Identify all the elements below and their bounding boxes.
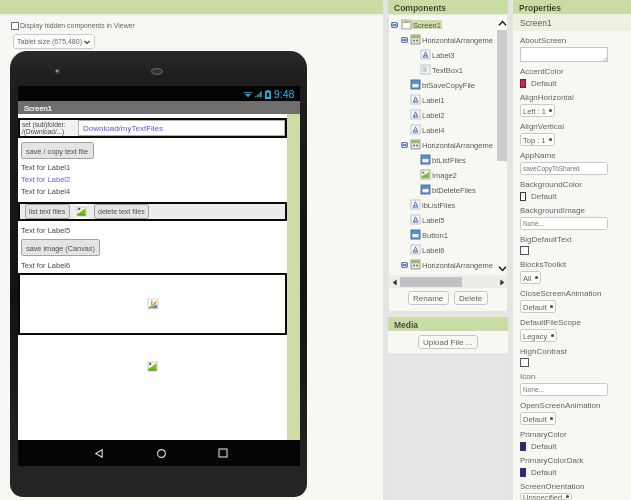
button[interactable]: Legacy: [520, 329, 557, 342]
staticText: Screen1: [24, 104, 52, 112]
button[interactable]: TextBox1: [388, 62, 508, 77]
staticText: AccentColor: [520, 67, 564, 76]
staticText: Image2: [432, 171, 458, 179]
button[interactable]: btListFiles: [388, 152, 508, 167]
staticText: AlignHorizontal: [520, 93, 574, 102]
button[interactable]: saveCopyToShared: [520, 162, 608, 175]
staticText: Text for Label4: [21, 187, 71, 195]
staticText: btDeleteFiles: [432, 186, 476, 194]
staticText: btSaveCopyFile: [422, 81, 475, 89]
staticText: AlignVertical: [520, 122, 565, 131]
button[interactable]: lbListFiles: [388, 197, 508, 212]
staticText: Default: [531, 192, 557, 201]
button[interactable]: Label5: [388, 212, 508, 227]
staticText: All: [523, 274, 532, 282]
button[interactable]: HorizontalArrangeme: [388, 257, 508, 272]
button[interactable]: Screen1: [388, 17, 508, 32]
button[interactable]: HorizontalArrangeme: [388, 137, 508, 152]
button[interactable]: Tablet size (675,480): [13, 34, 95, 49]
button[interactable]: Scroll left: [388, 276, 400, 288]
staticText: Icon: [520, 372, 536, 381]
button[interactable]: Label6: [388, 242, 508, 257]
staticText: Legacy: [523, 332, 548, 340]
button[interactable]: Label1: [388, 92, 508, 107]
button[interactable]: btSaveCopyFile: [388, 77, 508, 92]
staticText: HorizontalArrangeme: [422, 36, 493, 44]
staticText: Default: [531, 442, 557, 451]
staticText: Media: [394, 320, 419, 329]
button[interactable]: save / copy text file: [21, 142, 94, 159]
button[interactable]: Default: [520, 441, 557, 451]
button[interactable]: Default: [520, 467, 557, 477]
staticText: AppName: [520, 151, 556, 160]
staticText: Top : 1: [523, 136, 546, 144]
staticText: Unspecified: [523, 493, 563, 500]
staticText: BlocksToolkit: [520, 260, 567, 269]
staticText: /(Download/...): [22, 128, 65, 135]
staticText: Text for Label2: [21, 175, 71, 183]
staticText: Label4: [422, 126, 445, 134]
button[interactable]: [520, 47, 608, 62]
button[interactable]: Upload File ...: [418, 335, 478, 349]
button[interactable]: Default: [520, 191, 557, 201]
button[interactable]: Delete: [454, 291, 488, 305]
staticText: TextBox1: [432, 66, 463, 74]
staticText: save image (Canvas): [26, 244, 95, 252]
staticText: save / copy text file: [26, 147, 89, 155]
button[interactable]: Default: [520, 412, 556, 425]
staticText: BackgroundColor: [520, 180, 582, 189]
button[interactable]: Rename: [408, 291, 449, 305]
button[interactable]: Back: [88, 442, 110, 464]
staticText: Default: [531, 468, 557, 477]
button[interactable]: Display hidden components in Viewer: [11, 20, 135, 31]
button[interactable]: Unspecified: [520, 493, 572, 500]
staticText: Text for Label6: [21, 261, 71, 269]
button[interactable]: Label3: [388, 47, 508, 62]
button[interactable]: Default: [520, 78, 557, 88]
button[interactable]: None...: [520, 383, 608, 396]
button[interactable]: Left : 1: [520, 104, 555, 117]
button[interactable]: Toggle: [520, 358, 529, 367]
staticText: Text for Label5: [21, 226, 71, 234]
button[interactable]: Button1: [388, 227, 508, 242]
button[interactable]: Scroll right: [496, 276, 508, 288]
staticText: Button1: [422, 231, 448, 239]
button[interactable]: None...: [520, 217, 608, 230]
staticText: Label2: [422, 111, 445, 119]
button[interactable]: Toggle: [520, 246, 529, 255]
button[interactable]: Scroll up: [497, 17, 508, 30]
button[interactable]: Scroll down: [497, 262, 508, 275]
staticText: HorizontalArrangeme: [422, 261, 493, 269]
button[interactable]: delete text files: [94, 204, 149, 219]
button[interactable]: Top : 1: [520, 133, 555, 146]
button[interactable]: HorizontalArrangeme: [388, 32, 508, 47]
button[interactable]: btDeleteFiles: [388, 182, 508, 197]
staticText: CloseScreenAnimation: [520, 289, 602, 298]
staticText: Screen1: [520, 18, 552, 27]
button[interactable]: Label4: [388, 122, 508, 137]
staticText: None...: [523, 386, 544, 393]
staticText: None...: [523, 220, 544, 227]
button[interactable]: All: [520, 271, 541, 284]
staticText: Label3: [432, 51, 455, 59]
staticText: Properties: [519, 3, 562, 12]
staticText: HighContrast: [520, 347, 567, 356]
button[interactable]: Label2: [388, 107, 508, 122]
staticText: Upload File ...: [423, 338, 473, 347]
staticText: Default: [523, 303, 547, 311]
button[interactable]: Home: [150, 442, 172, 464]
staticText: Label1: [422, 96, 445, 104]
staticText: Default: [523, 415, 547, 423]
button[interactable]: Recents: [212, 442, 234, 464]
button[interactable]: Default: [520, 300, 556, 313]
button[interactable]: list text files: [25, 204, 70, 219]
staticText: Label6: [422, 246, 445, 254]
staticText: saveCopyToShared: [523, 165, 580, 172]
staticText: BigDefaultText: [520, 235, 572, 244]
staticText: BackgroundImage: [520, 206, 585, 215]
staticText: Tablet size (675,480): [17, 38, 82, 46]
staticText: HorizontalArrangeme: [422, 141, 493, 149]
staticText: Delete: [459, 294, 483, 303]
button[interactable]: save image (Canvas): [21, 239, 100, 256]
button[interactable]: Image2: [388, 167, 508, 182]
